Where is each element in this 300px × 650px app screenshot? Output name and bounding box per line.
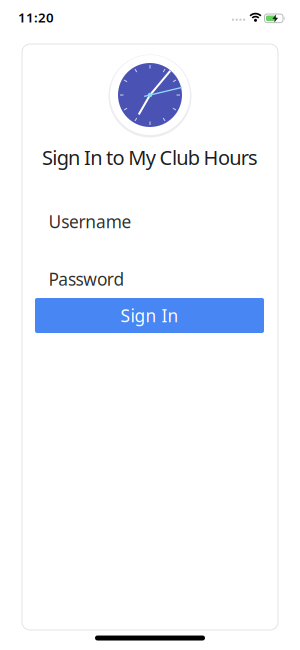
staticText: Sign In to My Club Hours xyxy=(42,144,258,171)
button[interactable]: Sign In xyxy=(35,298,264,333)
textField[interactable]: Password xyxy=(48,267,264,290)
textField[interactable]: Username xyxy=(48,210,264,233)
staticText: Sign In xyxy=(120,304,178,327)
staticText: 11:20 xyxy=(18,8,54,26)
staticText: Username xyxy=(48,210,131,233)
staticText: Password xyxy=(48,267,124,290)
